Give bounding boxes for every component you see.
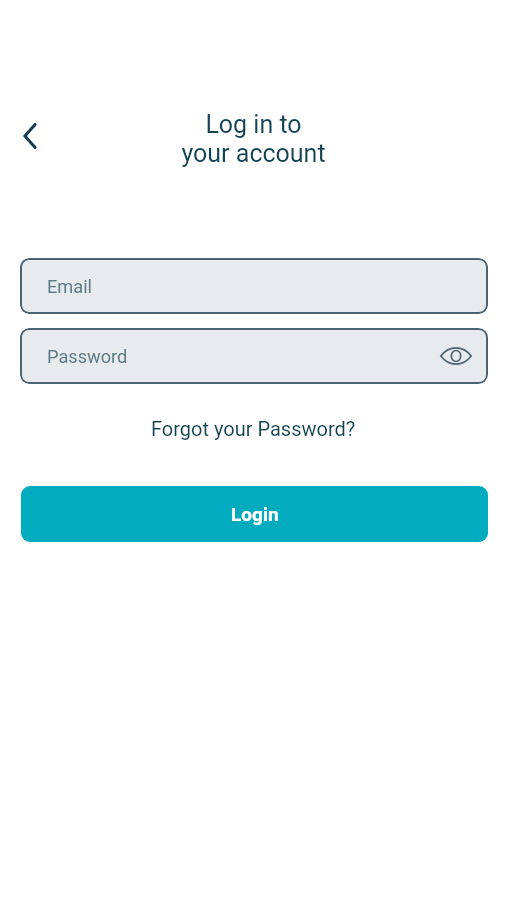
button[interactable]: Forgot your Password? bbox=[141, 411, 366, 446]
staticText: Password bbox=[47, 346, 128, 367]
button[interactable]: Password bbox=[20, 328, 488, 384]
button[interactable]: Email bbox=[20, 258, 488, 314]
staticText: your account bbox=[181, 139, 326, 168]
button[interactable]: Show password bbox=[437, 337, 475, 375]
button[interactable]: Back bbox=[10, 116, 50, 156]
staticText: Email bbox=[47, 276, 93, 297]
staticText: Forgot your Password? bbox=[151, 417, 356, 440]
button[interactable]: Login bbox=[21, 486, 488, 542]
staticText: Log in to bbox=[205, 110, 302, 139]
staticText: Login bbox=[231, 503, 279, 525]
